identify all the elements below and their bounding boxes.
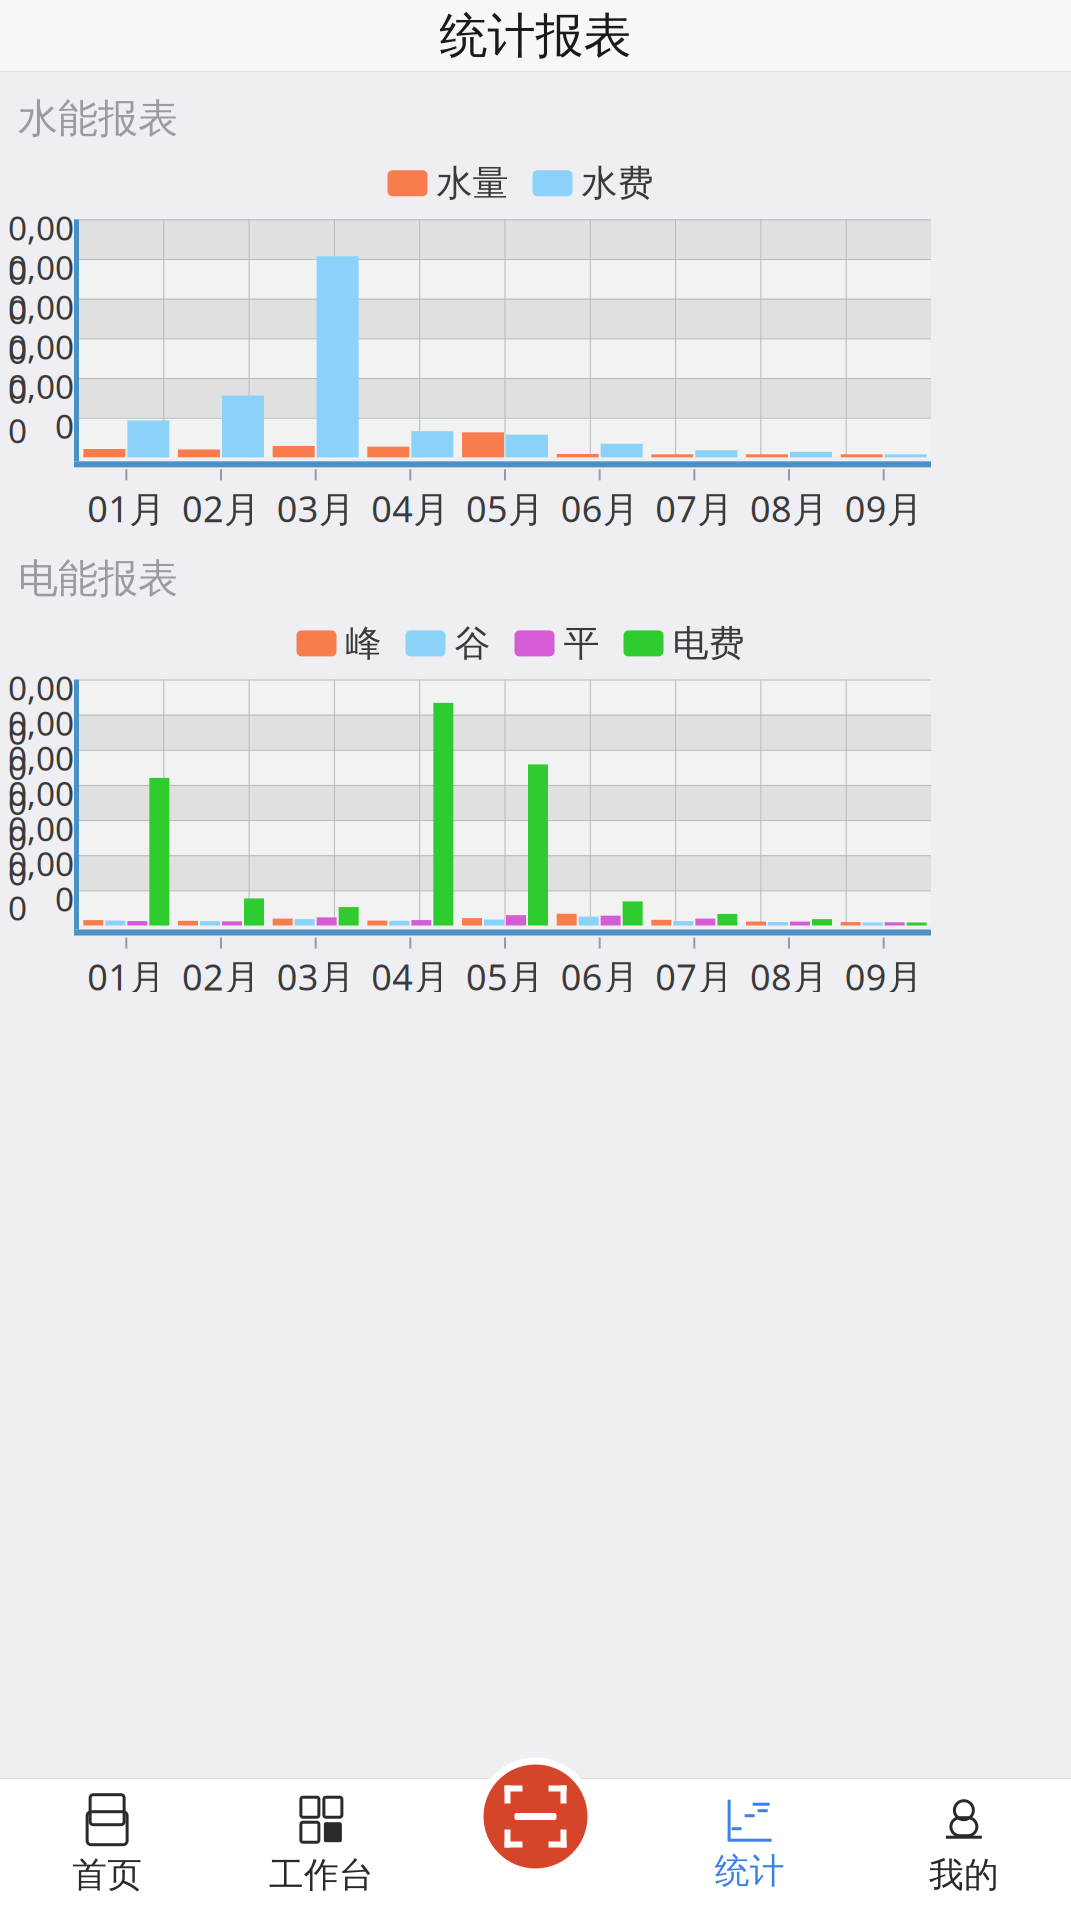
staticText: 统计	[715, 1850, 785, 1892]
staticText: 08月	[750, 952, 828, 1000]
staticText: 0,000	[8, 701, 74, 789]
staticText: 电能报表	[18, 554, 178, 603]
button[interactable]: 工作台	[214, 1782, 428, 1908]
staticText: 0,000	[8, 364, 74, 452]
staticText: 0,000	[8, 205, 74, 294]
staticText: 首页	[72, 1854, 142, 1896]
staticText: 0,000	[8, 285, 74, 373]
staticText: 峰	[345, 621, 381, 665]
staticText: 电费	[672, 621, 744, 665]
button[interactable]: 统计	[642, 1786, 857, 1904]
staticText: 0,000	[8, 245, 74, 333]
staticText: 04月	[371, 952, 449, 1000]
staticText: 07月	[655, 952, 733, 1000]
staticText: 09月	[845, 952, 923, 1000]
staticText: 水费	[581, 161, 653, 205]
staticText: 工作台	[269, 1854, 374, 1896]
staticText: 08月	[750, 484, 828, 532]
button[interactable]: 扫一扫	[473, 1754, 597, 1878]
staticText: 06月	[561, 952, 639, 1000]
staticText: 02月	[182, 484, 260, 532]
staticText: 0,000	[8, 771, 74, 859]
staticText: 04月	[371, 484, 449, 532]
staticText: 01月	[87, 952, 165, 1000]
staticText: 0,000	[8, 841, 74, 930]
staticText: 01月	[87, 484, 165, 532]
staticText: 0,000	[8, 806, 74, 895]
staticText: 0	[55, 404, 74, 448]
staticText: 0,000	[8, 324, 74, 413]
button[interactable]: 首页	[0, 1782, 214, 1908]
staticText: 水能报表	[18, 94, 178, 143]
staticText: 我的	[929, 1854, 999, 1896]
button[interactable]: 我的	[857, 1782, 1071, 1908]
staticText: 05月	[466, 952, 544, 1000]
staticText: 谷	[454, 621, 490, 665]
staticText: 05月	[466, 484, 544, 532]
staticText: 06月	[561, 484, 639, 532]
staticText: 0,000	[8, 665, 74, 754]
staticText: 07月	[655, 484, 733, 532]
staticText: 03月	[277, 484, 355, 532]
staticText: 平	[563, 621, 599, 665]
staticText: 09月	[845, 484, 923, 532]
staticText: 0	[55, 876, 74, 921]
staticText: 0,000	[8, 736, 74, 824]
staticText: 02月	[182, 952, 260, 1000]
staticText: 统计报表	[439, 6, 631, 65]
staticText: 03月	[277, 952, 355, 1000]
staticText: 水量	[436, 161, 508, 205]
